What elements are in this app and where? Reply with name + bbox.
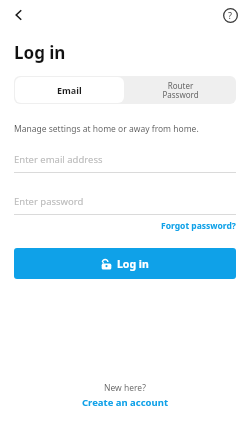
- button[interactable]: Log in: [14, 248, 236, 279]
- staticText: Log in: [117, 257, 149, 271]
- staticText: ?: [228, 9, 233, 21]
- button[interactable]: Forgot password?: [161, 220, 236, 232]
- button[interactable]: Enter password: [14, 195, 236, 215]
- staticText: Forgot password?: [161, 220, 236, 232]
- staticText: Create an account: [82, 396, 169, 409]
- button[interactable]: Create an account: [82, 396, 169, 409]
- staticText: Router Password: [162, 80, 199, 101]
- button[interactable]: Back: [6, 2, 32, 28]
- button[interactable]: Help: [218, 3, 242, 27]
- staticText: New here?: [104, 382, 146, 394]
- staticText: Email: [57, 84, 82, 96]
- button[interactable]: Email: [15, 77, 124, 103]
- staticText: Log in: [14, 41, 66, 64]
- button[interactable]: Router Password: [125, 76, 236, 104]
- staticText: Manage settings at home or away from hom…: [14, 123, 199, 135]
- staticText: Enter email address: [14, 153, 103, 166]
- staticText: Enter password: [14, 195, 84, 208]
- button[interactable]: Enter email address: [14, 153, 236, 173]
